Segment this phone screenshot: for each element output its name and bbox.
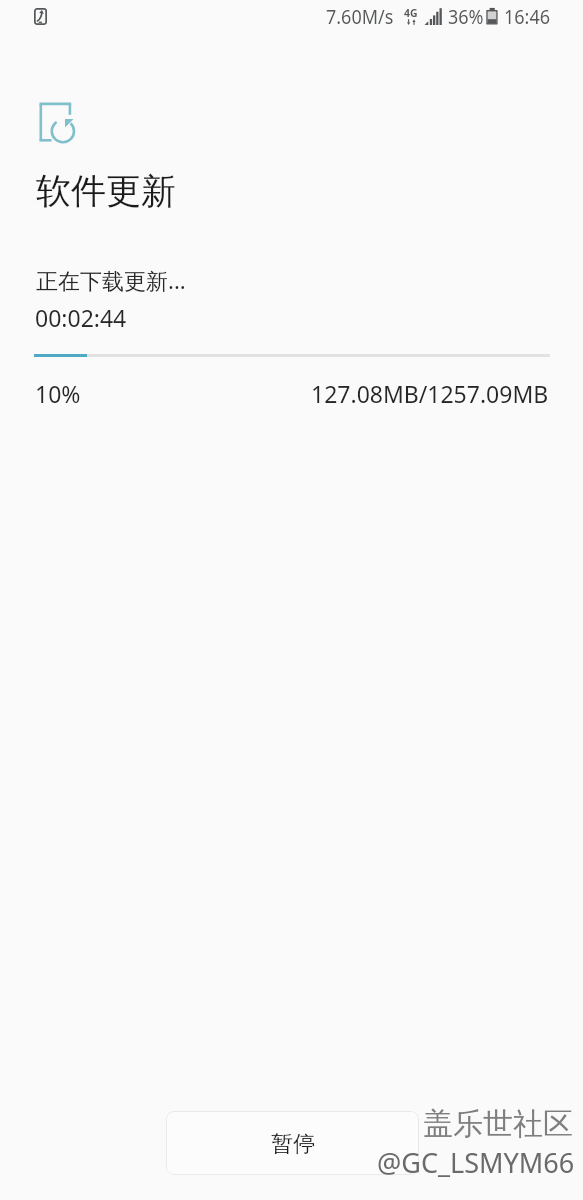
- other: Signal strength: [424, 8, 443, 25]
- staticText: 软件更新: [36, 169, 176, 213]
- staticText: 盖乐世社区: [423, 1105, 573, 1143]
- other: Battery 36 percent: [486, 7, 498, 25]
- staticText: @GC_LSMYM66: [377, 1143, 575, 1181]
- staticText: 10%: [35, 378, 81, 409]
- staticText: 7.60M/s: [326, 3, 393, 30]
- staticText: 00:02:44: [35, 302, 127, 333]
- staticText: 暂停: [271, 1130, 315, 1158]
- staticText: 127.08MB/1257.09MB: [311, 378, 549, 409]
- other: Mobile data active: [406, 18, 417, 26]
- staticText: 36%: [448, 3, 484, 30]
- button[interactable]: 暂停: [166, 1111, 419, 1175]
- staticText: 正在下载更新...: [36, 265, 186, 295]
- staticText: 4G: [404, 5, 418, 20]
- other: Smart stay: [34, 8, 47, 25]
- other: Software update: [36, 99, 78, 141]
- staticText: 16:46: [504, 3, 551, 30]
